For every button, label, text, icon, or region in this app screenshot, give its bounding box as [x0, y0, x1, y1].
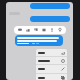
other: Edit: [61, 67, 65, 71]
button[interactable]: Copy: [36, 74, 67, 80]
button[interactable]: [15, 35, 63, 46]
button[interactable]: Tapback reactions: [14, 26, 66, 34]
button[interactable]: Edit: [36, 65, 67, 73]
button[interactable]: Reaction 1: [26, 28, 30, 32]
button[interactable]: [30, 16, 70, 22]
button[interactable]: Undo Send: [36, 57, 67, 64]
other: Undo Send: [61, 59, 65, 63]
button[interactable]: Reaction 4: [50, 28, 54, 32]
button[interactable]: Reply: [36, 49, 67, 56]
button[interactable]: Reaction 2: [34, 28, 38, 32]
button[interactable]: Reaction 3: [42, 28, 46, 32]
button[interactable]: Reaction 0: [18, 28, 22, 32]
button[interactable]: Reaction 5: [58, 28, 62, 32]
other: Copy: [61, 76, 65, 80]
button[interactable]: [30, 3, 70, 9]
other: Reply: [61, 51, 65, 55]
